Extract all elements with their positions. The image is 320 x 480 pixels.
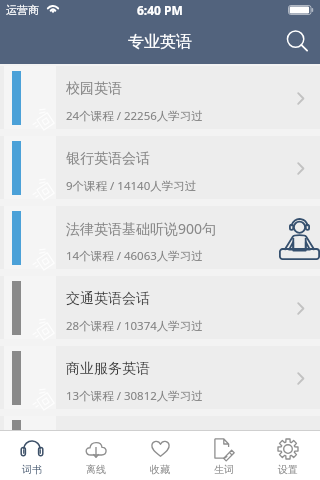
staticText: 离线 [86,463,106,476]
staticText: 校园英语 [66,80,122,98]
button[interactable]: 收藏 [128,431,192,480]
staticText: 14个课程 / 46063人学习过 [66,248,203,264]
button[interactable]: 银行英语会话 [0,136,320,199]
staticText: 词书 [22,463,42,476]
button[interactable]: 离线 [64,431,128,480]
staticText: 运营商 [6,3,39,17]
button[interactable]: 校园英语 [0,66,320,129]
staticText: 法律英语基础听说900句 [66,219,217,238]
staticText: 商业服务英语 [66,360,150,378]
button[interactable]: 商业服务英语 [0,346,320,409]
staticText: 交通英语会话 [66,290,150,308]
button[interactable]: 交通英语会话 [0,276,320,339]
staticText: 收藏 [150,463,170,476]
button[interactable]: 生词 [192,431,256,480]
staticText: 专业英语 [128,32,192,52]
staticText: 13个课程 / 30812人学习过 [66,388,203,404]
button[interactable]: 词书 [0,431,64,480]
button[interactable]: 法律英语基础听说900句 [0,206,320,269]
staticText: 生词 [214,463,234,476]
staticText: 银行英语会话 [66,150,150,168]
staticText: 24个课程 / 22256人学习过 [66,108,203,124]
staticText: 设置 [278,463,298,476]
staticText: 6:40 PM [137,2,183,18]
button[interactable]: 设置 [256,431,320,480]
button[interactable]: Search [276,20,320,64]
staticText: 9个课程 / 14140人学习过 [66,178,197,194]
staticText: 28个课程 / 10374人学习过 [66,318,203,334]
